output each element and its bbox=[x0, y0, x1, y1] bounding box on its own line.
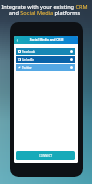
staticText: LinkedIn bbox=[22, 58, 35, 62]
staticText: Integrate with your existing CRM and Soc… bbox=[1, 3, 88, 17]
button[interactable]: LinkedIn bbox=[16, 56, 75, 63]
button[interactable]: CONNECT bbox=[16, 151, 75, 160]
button[interactable]: Back bbox=[14, 37, 21, 44]
staticText: Social Media and CRM bbox=[18, 38, 75, 42]
staticText: Twitter bbox=[22, 66, 32, 70]
button[interactable]: Twitter bbox=[16, 64, 75, 71]
staticText: CONNECT bbox=[39, 154, 53, 158]
button[interactable]: Facebook bbox=[16, 48, 75, 55]
staticText: Facebook bbox=[22, 50, 36, 54]
